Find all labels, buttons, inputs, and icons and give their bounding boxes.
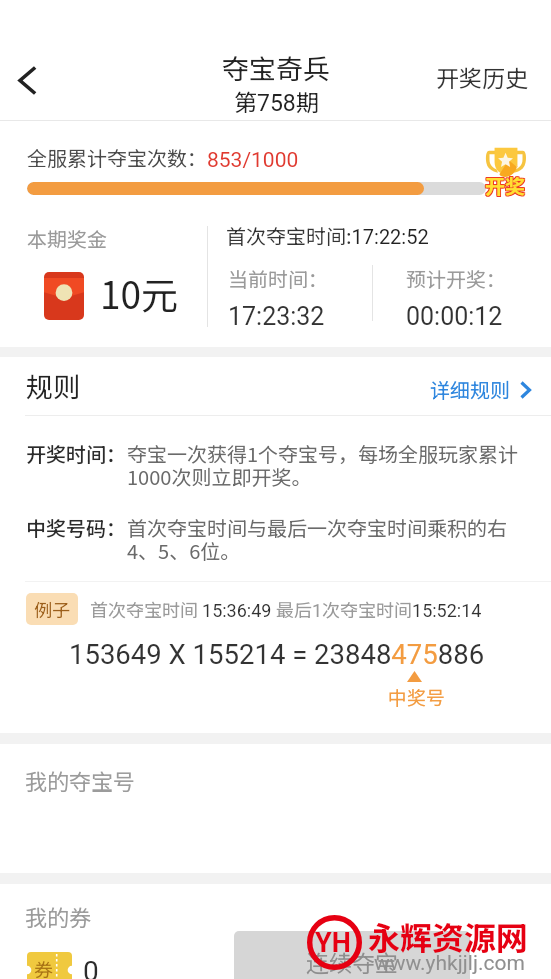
staticText: 首次夺宝时间:17:22:52 [226,221,429,250]
staticText: 中奖号码： [26,513,126,542]
staticText: 开奖 [486,172,526,201]
button[interactable]: Back [3,56,51,104]
staticText: 连续夺宝 [306,945,398,978]
staticText: 开奖 [484,171,524,200]
staticText: 00:00:12 [406,302,503,331]
button[interactable]: 连续夺宝 [234,931,470,979]
staticText: 夺宝一次获得1个夺宝号，每场全服玩家累计1000次则立即开奖。 [127,439,524,491]
staticText: 预计开奖： [406,264,506,293]
button[interactable]: 开奖历史 [420,52,551,101]
staticText: 本期奖金 [27,224,107,253]
staticText: 0 [83,955,99,979]
staticText: 中奖号 [388,683,446,711]
staticText: 开奖时间： [26,439,126,468]
staticText: www.yhkjjlj.com [374,951,525,976]
staticText: 第758期 [234,84,319,117]
button[interactable]: 详细规则 [420,369,549,410]
staticText: 永辉资源网 [368,913,529,959]
staticText: 开奖 [485,172,525,201]
staticText: 开奖 [484,170,524,199]
staticText: 详细规则 [430,375,510,404]
staticText: 当前时间： [228,264,328,293]
staticText: 我的夺宝号 [25,764,136,796]
staticText: 券 [34,955,54,979]
staticText: 首次夺宝时间 15:36:49 最后1次夺宝时间15:52:14 [90,596,482,622]
staticText: 853/1000 [207,148,299,173]
staticText: 我的券 [25,900,92,932]
staticText: YH [315,927,351,959]
staticText: 首次夺宝时间与最后一次夺宝时间乘积的右4、5、6位。 [127,513,524,565]
staticText: 开奖 [486,171,526,200]
staticText: 开奖 [484,172,524,201]
staticText: 夺宝奇兵 [222,48,330,87]
staticText: 17:23:32 [228,302,325,331]
staticText: 开奖 [486,170,526,199]
staticText: 全服累计夺宝次数： [27,143,207,172]
staticText: 153649 X 155214 = 23848475886 [69,638,485,670]
button[interactable]: 开奖 [484,147,528,199]
staticText: 开奖 [485,170,525,199]
staticText: 例子 [34,596,70,622]
staticText: 开奖 [485,171,525,200]
staticText: 开奖历史 [436,60,528,93]
staticText: 规则 [26,366,80,405]
staticText: 10元 [100,266,179,320]
